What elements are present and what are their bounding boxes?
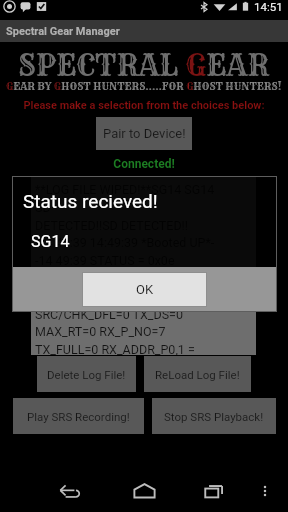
- staticText: TX_FULL=0 RX_ADDR_P0,1 =: [35, 342, 195, 355]
- staticText: **LOG FILE WIPED!**SG14 SG14: [35, 182, 215, 197]
- button[interactable]: Pair to Device!: [96, 117, 192, 150]
- staticText: Stop SRS Playback!: [164, 410, 264, 423]
- staticText: OK: [136, 282, 154, 297]
- staticText: SRC/CHK_DFL=0 TX_DS=0: [35, 307, 183, 322]
- staticText: Pair to Device!: [103, 126, 186, 141]
- button[interactable]: More options: [250, 476, 280, 506]
- staticText: Connected!: [0, 157, 288, 171]
- staticText: GEAR BY GHOST HUNTERS.....FOR GHOST HUNT…: [6, 80, 282, 93]
- staticText: MAX_RT=0 RX_P_NO=7: [35, 324, 166, 339]
- button[interactable]: Home: [122, 470, 166, 512]
- staticText: SG14: [31, 232, 70, 251]
- staticText: SPECTRAL GEAR: [18, 47, 270, 83]
- staticText: -14 49:39 STATUS = 0x0e: [35, 253, 175, 268]
- button[interactable]: Delete Log File!: [37, 356, 136, 392]
- button[interactable]: Back: [48, 470, 92, 512]
- staticText: Status recieved!: [23, 190, 158, 212]
- button[interactable]: Play SRS Recording!: [13, 398, 144, 434]
- staticText: Delete Log File!: [47, 368, 126, 381]
- button[interactable]: OK: [82, 272, 207, 307]
- staticText: Play SRS Recording!: [27, 410, 130, 423]
- staticText: Please make a selection from the choices…: [0, 99, 288, 112]
- staticText: SD: [35, 200, 51, 215]
- staticText: Spectral Gear Manager: [6, 25, 120, 38]
- button[interactable]: Stop SRS Playback!: [152, 398, 276, 434]
- button[interactable]: ReLoad Log File!: [144, 356, 251, 392]
- staticText: ReLoad Log File!: [155, 368, 240, 381]
- staticText: CONFIG=0x0b EN_AA=0x3f: [35, 271, 187, 286]
- button[interactable]: Recent apps: [192, 470, 236, 512]
- staticText: -14 49:39 14:49:39 *Booted UP*-: [35, 235, 215, 250]
- staticText: 14:51: [254, 0, 283, 13]
- staticText: EN_RXADDR=0x03 RF_CH=0x4c: [35, 289, 213, 304]
